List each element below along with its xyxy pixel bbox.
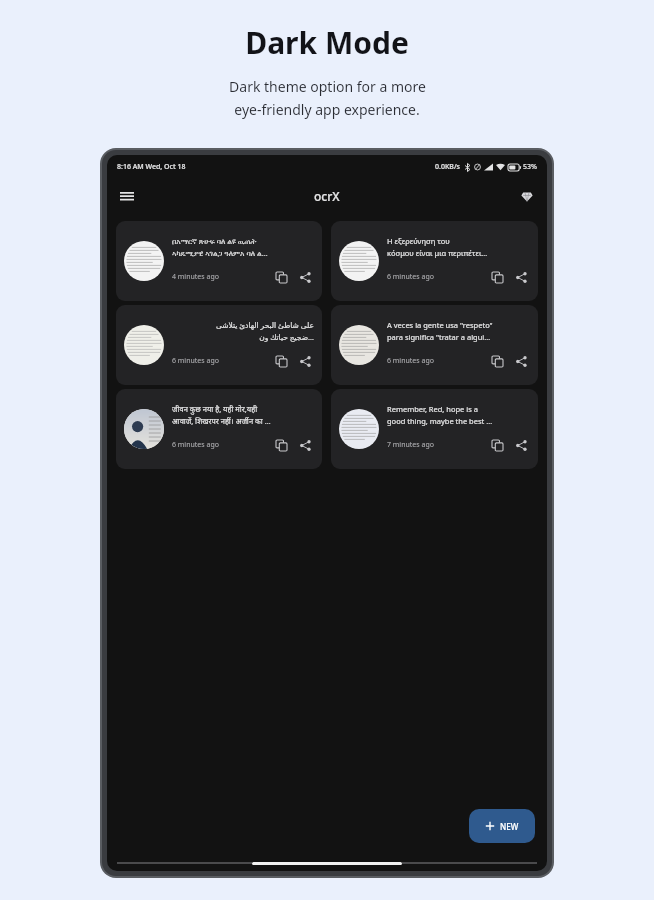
button[interactable]: Share xyxy=(512,436,530,454)
button[interactable]: على شاطئ البحر الهادئ يتلاشى xyxy=(116,305,322,385)
staticText: 6 minutes ago xyxy=(172,440,219,450)
button[interactable]: Remember, Red, hope is a xyxy=(331,389,538,469)
staticText: 53% xyxy=(523,162,537,172)
button[interactable]: Open navigation menu xyxy=(113,182,141,210)
button[interactable]: Share xyxy=(296,352,314,370)
button[interactable]: በአማርኛ ጽሁፍ ባለ ልዩ ዉጤት xyxy=(116,221,322,301)
button[interactable]: Copy text xyxy=(488,268,506,286)
staticText: 8:16 AM Wed, Oct 18 xyxy=(117,162,186,172)
staticText: eye-friendly app experience. xyxy=(234,100,420,119)
button[interactable]: Share xyxy=(296,268,314,286)
staticText: आवाजें, शिखरपर नहीं। अर्जीन का … xyxy=(172,416,314,426)
button[interactable]: जीवन कुछ नया है, यही मोर,यही xyxy=(116,389,322,469)
staticText: Dark Mode xyxy=(245,22,409,63)
button[interactable]: Copy text xyxy=(272,268,290,286)
staticText: ኣካዴሚያዊ ኣገልጋ ዓለምአ ባለ ል… xyxy=(172,248,314,258)
staticText: 0.0KB/s xyxy=(435,162,461,172)
button[interactable]: Share xyxy=(296,436,314,454)
staticText: good thing, maybe the best … xyxy=(387,416,530,426)
staticText: A veces la gente usa "respeto" xyxy=(387,320,530,330)
staticText: κόσμου είναι μια περιπέτει… xyxy=(387,248,530,258)
button[interactable]: Share xyxy=(512,352,530,370)
button[interactable]: NEW xyxy=(469,809,535,843)
staticText: ضجيج حياتك ون… xyxy=(172,332,314,342)
staticText: NEW xyxy=(500,821,519,832)
staticText: Remember, Red, hope is a xyxy=(387,404,530,414)
staticText: على شاطئ البحر الهادئ يتلاشى xyxy=(172,320,314,330)
staticText: 6 minutes ago xyxy=(387,272,434,282)
button[interactable]: Η εξερεύνηση του xyxy=(331,221,538,301)
staticText: Η εξερεύνηση του xyxy=(387,236,530,246)
staticText: 7 minutes ago xyxy=(387,440,434,450)
staticText: 6 minutes ago xyxy=(172,356,219,366)
button[interactable]: A veces la gente usa "respeto" xyxy=(331,305,538,385)
staticText: 4 minutes ago xyxy=(172,272,219,282)
button[interactable]: Copy text xyxy=(272,436,290,454)
staticText: በአማርኛ ጽሁፍ ባለ ልዩ ዉጤት xyxy=(172,236,314,246)
button[interactable]: Copy text xyxy=(488,436,506,454)
staticText: ocrX xyxy=(314,188,340,204)
button[interactable]: Share xyxy=(512,268,530,286)
button[interactable]: Premium xyxy=(513,182,541,210)
staticText: जीवन कुछ नया है, यही मोर,यही xyxy=(172,404,314,414)
button[interactable]: Copy text xyxy=(488,352,506,370)
button[interactable]: Copy text xyxy=(272,352,290,370)
staticText: Dark theme option for a more xyxy=(229,77,426,96)
staticText: 6 minutes ago xyxy=(387,356,434,366)
staticText: para significa "tratar a algui… xyxy=(387,332,530,342)
